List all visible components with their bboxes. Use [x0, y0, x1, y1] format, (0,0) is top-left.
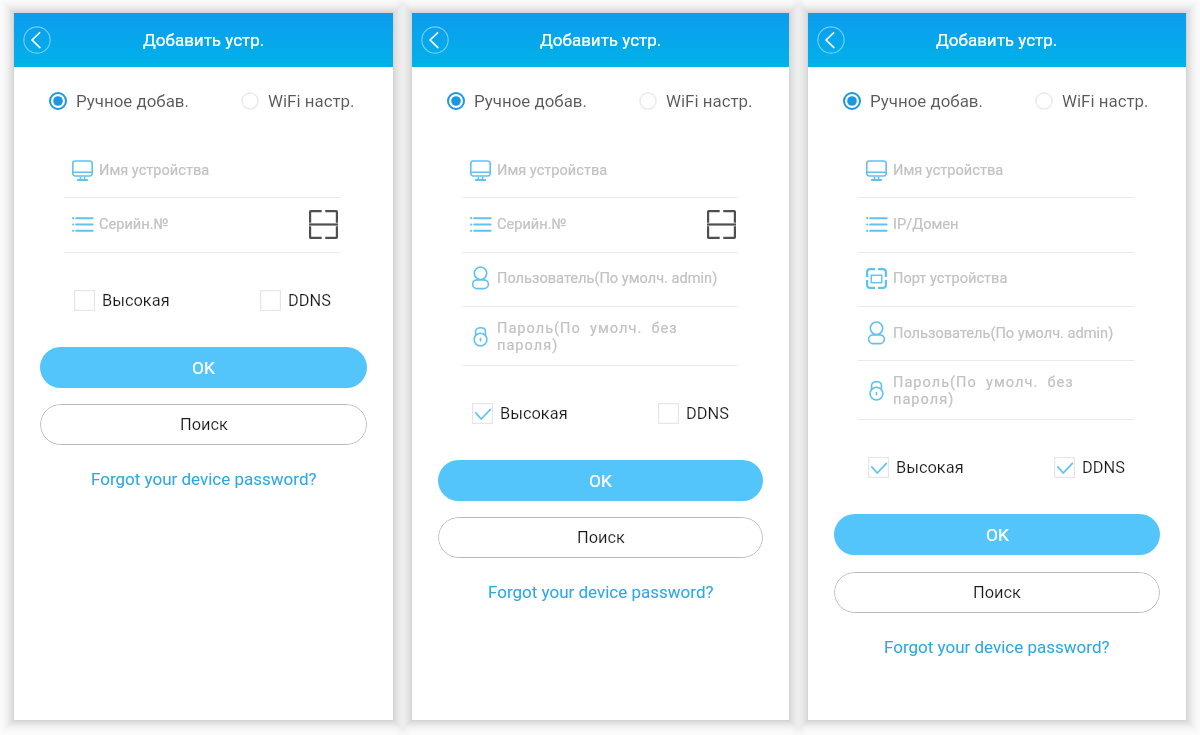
staticText: Добавить устр. [540, 30, 662, 50]
button[interactable]: Ручное добав. [843, 91, 983, 111]
staticText: Forgot your device password? [488, 582, 714, 602]
button[interactable]: Ручное добав. [49, 91, 189, 111]
staticText: WiFi настр. [1062, 91, 1149, 111]
button[interactable]: Высокая [472, 402, 568, 424]
button[interactable]: Высокая [868, 456, 964, 478]
staticText: Высокая [500, 404, 568, 423]
staticText: Добавить устр. [936, 30, 1058, 50]
staticText: Пользователь(По умолч. admin) [893, 324, 1114, 341]
button[interactable]: Поиск [438, 517, 763, 558]
staticText: Ручное добав. [474, 91, 587, 111]
button[interactable]: DDNS [658, 402, 729, 424]
button[interactable]: Пароль(По умолч. без пароля) [462, 306, 738, 365]
button[interactable]: OK [438, 460, 763, 501]
staticText: WiFi настр. [666, 91, 753, 111]
button[interactable]: DDNS [1054, 456, 1125, 478]
button[interactable]: Пользователь(По умолч. admin) [858, 306, 1134, 360]
staticText: Ручное добав. [870, 91, 983, 111]
button[interactable]: Высокая [74, 289, 170, 311]
button[interactable]: WiFi настр. [1035, 91, 1149, 111]
staticText: DDNS [1082, 458, 1125, 477]
staticText: Пароль(По умолч. без [497, 319, 678, 336]
button[interactable]: Порт устройства [858, 252, 1134, 306]
staticText: Высокая [102, 291, 170, 310]
button[interactable]: Scan QR code [309, 210, 338, 239]
button[interactable]: Пароль(По умолч. без пароля) [858, 360, 1134, 419]
button[interactable]: Forgot your device password? [834, 633, 1160, 661]
staticText: DDNS [288, 291, 331, 310]
staticText: Высокая [896, 458, 964, 477]
staticText: Поиск [180, 415, 228, 434]
staticText: IP/Домен [893, 215, 959, 232]
button[interactable]: Пользователь(По умолч. admin) [462, 252, 738, 306]
staticText: Добавить устр. [143, 30, 265, 50]
button[interactable]: WiFi настр. [639, 91, 753, 111]
button[interactable]: IP/Домен [858, 197, 1134, 251]
button[interactable]: OK [40, 347, 367, 388]
staticText: Ручное добав. [76, 91, 189, 111]
staticText: Серийн.№ [99, 215, 169, 232]
button[interactable]: Серийн.№ [64, 197, 340, 251]
staticText: Порт устройства [893, 269, 1008, 286]
button[interactable]: OK [834, 514, 1160, 555]
staticText: Имя устройства [893, 161, 1004, 178]
button[interactable]: Ручное добав. [447, 91, 587, 111]
button[interactable]: WiFi настр. [241, 91, 355, 111]
staticText: WiFi настр. [268, 91, 355, 111]
staticText: OK [986, 525, 1009, 545]
button[interactable]: Имя устройства [462, 143, 738, 197]
button[interactable]: DDNS [260, 289, 331, 311]
staticText: Имя устройства [99, 161, 210, 178]
button[interactable]: Forgot your device password? [438, 578, 763, 606]
button[interactable]: Back [23, 26, 51, 54]
staticText: пароля) [497, 336, 559, 353]
staticText: OK [192, 358, 215, 378]
button[interactable]: Поиск [834, 572, 1160, 613]
button[interactable]: Forgot your device password? [40, 465, 367, 493]
staticText: Forgot your device password? [884, 637, 1110, 657]
button[interactable]: Back [817, 26, 845, 54]
button[interactable]: Scan QR code [707, 210, 736, 239]
button[interactable]: Поиск [40, 404, 367, 445]
button[interactable]: Серийн.№ [462, 197, 738, 251]
button[interactable]: Back [421, 26, 449, 54]
staticText: пароля) [893, 390, 955, 407]
staticText: Поиск [577, 528, 625, 547]
staticText: Пароль(По умолч. без [893, 373, 1074, 390]
staticText: Поиск [973, 583, 1021, 602]
staticText: Имя устройства [497, 161, 608, 178]
staticText: Forgot your device password? [91, 469, 317, 489]
button[interactable]: Имя устройства [858, 143, 1134, 197]
staticText: Серийн.№ [497, 215, 567, 232]
staticText: DDNS [686, 404, 729, 423]
staticText: OK [589, 471, 612, 491]
staticText: Пользователь(По умолч. admin) [497, 269, 718, 286]
button[interactable]: Имя устройства [64, 143, 340, 197]
